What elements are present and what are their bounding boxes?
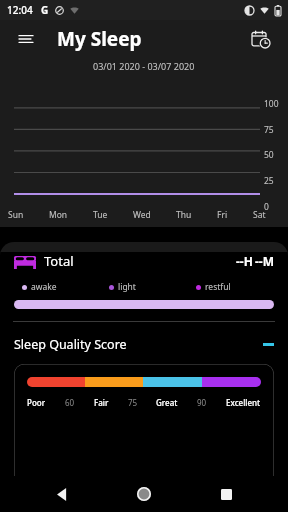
staticText: 50 — [264, 149, 274, 161]
staticText: Mon — [49, 209, 68, 221]
button[interactable]: Back — [42, 476, 82, 512]
staticText: awake — [31, 281, 57, 293]
staticText: Wed — [133, 209, 151, 221]
staticText: Fair — [94, 397, 109, 408]
staticText: Great — [156, 397, 178, 408]
staticText: Total — [44, 252, 74, 270]
staticText: Poor — [27, 397, 46, 408]
staticText: Sun — [8, 209, 24, 221]
staticText: 90 — [197, 397, 207, 408]
staticText: 03/01 2020 - 03/07 2020 — [93, 60, 195, 72]
staticText: 60 — [65, 397, 75, 408]
staticText: 75 — [264, 124, 274, 136]
staticText: restful — [205, 281, 231, 293]
staticText: light — [118, 281, 136, 293]
staticText: 100 — [264, 98, 279, 110]
staticText: --M — [255, 253, 274, 269]
button[interactable]: Open navigation menu — [14, 27, 38, 51]
staticText: 75 — [128, 397, 138, 408]
staticText: Fri — [217, 209, 228, 221]
button[interactable]: Home — [124, 476, 164, 512]
button[interactable]: Recent apps — [206, 476, 246, 512]
staticText: Excellent — [226, 397, 261, 408]
staticText: Sleep Quality Score — [14, 336, 127, 353]
staticText: Tue — [93, 209, 108, 221]
staticText: --H — [236, 253, 253, 269]
button[interactable]: Pick date range — [248, 26, 274, 52]
staticText: 25 — [264, 175, 274, 187]
staticText: 12:04 — [7, 3, 33, 17]
button[interactable]: Poor — [14, 364, 274, 512]
staticText: Thu — [176, 209, 192, 221]
staticText: 0 — [264, 201, 269, 213]
staticText: Sat — [253, 209, 266, 221]
staticText: G — [41, 3, 49, 17]
staticText: My Sleep — [57, 26, 142, 52]
